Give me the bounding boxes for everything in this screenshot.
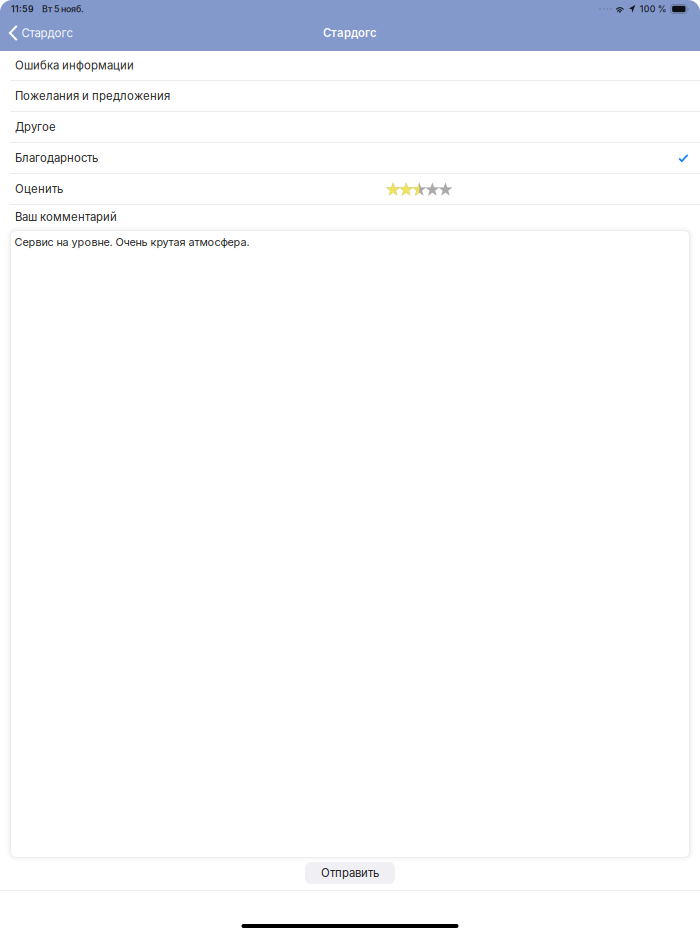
staticText: Сервис на уровне. Очень крутая атмосфера…	[15, 235, 250, 249]
staticText: Стардогс	[323, 26, 377, 40]
staticText: Отправить	[321, 866, 379, 880]
button[interactable]: Отправить	[305, 862, 395, 884]
button[interactable]: Ошибка информации	[0, 51, 700, 81]
button[interactable]: Пожелания и предложения	[0, 81, 700, 112]
staticText: Стардогс	[21, 26, 73, 40]
staticText: Вт 5 нояб.	[42, 4, 84, 14]
staticText: Оценить	[15, 182, 63, 196]
button[interactable]: Другое	[0, 112, 700, 143]
staticText: 100 %	[640, 4, 667, 14]
button[interactable]: Благодарность	[0, 143, 700, 174]
staticText: Пожелания и предложения	[15, 89, 170, 103]
staticText: Ваш комментарий	[15, 210, 117, 224]
staticText: 11:59	[11, 4, 34, 14]
staticText: Благодарность	[15, 151, 98, 165]
staticText: Другое	[15, 120, 56, 134]
button[interactable]: Оценить	[0, 174, 700, 205]
staticText: Ошибка информации	[15, 59, 134, 72]
button[interactable]: Стардогс	[0, 18, 79, 48]
button[interactable]: Ваш комментарий	[0, 205, 700, 230]
